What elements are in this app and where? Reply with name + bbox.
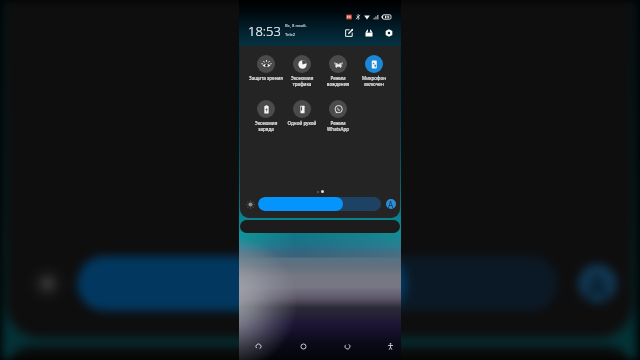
staticText: Tele2 — [285, 32, 296, 38]
button[interactable]: Режим — [320, 55, 356, 87]
button[interactable]: Экономия — [284, 55, 320, 87]
staticText: A — [388, 199, 394, 209]
staticText: Защита зрения — [248, 75, 284, 81]
staticText: Вс, 8 нояб. — [285, 23, 307, 29]
staticText: 18:53 — [248, 22, 281, 40]
button[interactable] — [240, 220, 400, 233]
staticText: A — [587, 264, 608, 303]
button[interactable]: Auto brightness — [578, 264, 617, 303]
button[interactable]: Recents — [338, 337, 356, 355]
button[interactable]: Одной рукой — [284, 100, 320, 126]
staticText: Экономия — [248, 120, 284, 126]
staticText: вождения — [320, 81, 356, 87]
button[interactable]: Защита зрения — [248, 55, 284, 81]
button[interactable]: Settings — [381, 25, 397, 41]
button[interactable]: Back — [249, 337, 267, 355]
button[interactable]: Home — [294, 337, 312, 355]
staticText: WhatsApp — [320, 0, 461, 1]
button[interactable]: Микрофон — [356, 55, 392, 87]
staticText: WhatsApp — [320, 126, 356, 132]
staticText: Режим — [320, 75, 356, 81]
staticText: трафика — [284, 81, 320, 87]
staticText: Микрофон — [356, 75, 392, 81]
staticText: заряда — [248, 126, 284, 132]
staticText: Экономия — [284, 75, 320, 81]
button[interactable]: Inbox — [361, 25, 377, 41]
button[interactable]: Режим — [320, 100, 356, 132]
button[interactable]: Режим — [320, 0, 461, 1]
button[interactable]: Accessibility — [383, 339, 397, 353]
button[interactable] — [258, 197, 381, 211]
staticText: Одной рукой — [284, 120, 320, 126]
button[interactable]: Экономия — [248, 100, 284, 132]
button[interactable] — [6, 346, 633, 360]
staticText: включен — [356, 81, 392, 87]
button[interactable] — [77, 256, 558, 311]
button[interactable]: Auto brightness — [386, 199, 396, 209]
button[interactable]: Edit — [341, 25, 357, 41]
staticText: Режим — [320, 120, 356, 126]
